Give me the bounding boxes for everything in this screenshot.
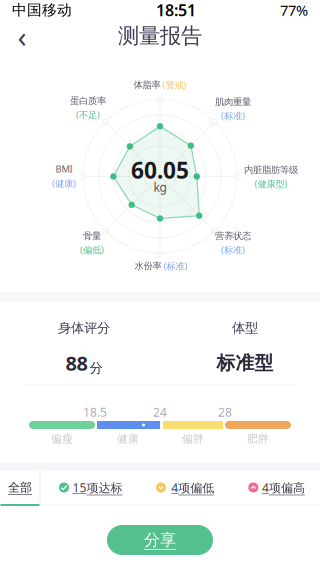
staticText: 肥胖 bbox=[247, 432, 269, 445]
staticText: 体型 bbox=[232, 320, 258, 336]
staticText: 4项偏高 bbox=[262, 479, 305, 495]
staticText: 体脂率 bbox=[133, 79, 160, 91]
staticText: kg bbox=[153, 179, 166, 195]
staticText: 健康 bbox=[117, 432, 139, 445]
staticText: (健康型) bbox=[254, 177, 287, 190]
staticText: BMI bbox=[55, 163, 72, 175]
staticText: 60.05 bbox=[131, 155, 189, 185]
staticText: 内脏脂肪等级 bbox=[244, 164, 298, 176]
staticText: (不足) bbox=[76, 108, 100, 121]
button[interactable]: 4项偏高 bbox=[0, 0, 320, 568]
staticText: (偏低) bbox=[80, 243, 104, 256]
staticText: 18:51 bbox=[156, 0, 196, 21]
staticText: 77% bbox=[280, 0, 308, 20]
staticText: ‹ bbox=[17, 16, 26, 55]
staticText: 骨量 bbox=[83, 230, 101, 242]
button[interactable]: 分享 bbox=[107, 525, 213, 555]
staticText: 4项偏低 bbox=[171, 479, 214, 495]
staticText: 15项达标 bbox=[72, 479, 122, 495]
staticText: 偏胖 bbox=[182, 432, 204, 445]
button[interactable]: 4项偏低 bbox=[0, 0, 320, 568]
staticText: 18.5 bbox=[83, 404, 107, 420]
staticText: 分 bbox=[89, 360, 102, 376]
button[interactable]: Back bbox=[2, 18, 42, 54]
staticText: 肌肉重量 bbox=[215, 96, 251, 108]
staticText: 中国移动 bbox=[12, 1, 72, 19]
staticText: 88 bbox=[65, 350, 87, 376]
staticText: 蛋白质率 bbox=[70, 95, 106, 107]
staticText: (健康) bbox=[52, 177, 76, 189]
staticText: (标准) bbox=[221, 243, 245, 256]
staticText: 营养状态 bbox=[215, 230, 251, 242]
staticText: 标准型 bbox=[216, 351, 273, 374]
staticText: 全部 bbox=[8, 480, 32, 495]
button[interactable]: 全部 bbox=[0, 471, 40, 504]
staticText: 身体评分 bbox=[58, 320, 110, 336]
staticText: 测量报告 bbox=[118, 23, 202, 49]
staticText: (警戒) bbox=[162, 79, 186, 91]
staticText: 28 bbox=[218, 404, 232, 420]
staticText: 分享 bbox=[144, 530, 176, 550]
button[interactable]: 15项达标 bbox=[0, 0, 320, 568]
staticText: (标准) bbox=[221, 109, 245, 122]
staticText: 水份率 bbox=[134, 260, 161, 272]
staticText: 偏瘦 bbox=[51, 432, 73, 445]
staticText: (标准) bbox=[163, 260, 187, 272]
staticText: 24 bbox=[153, 404, 167, 420]
